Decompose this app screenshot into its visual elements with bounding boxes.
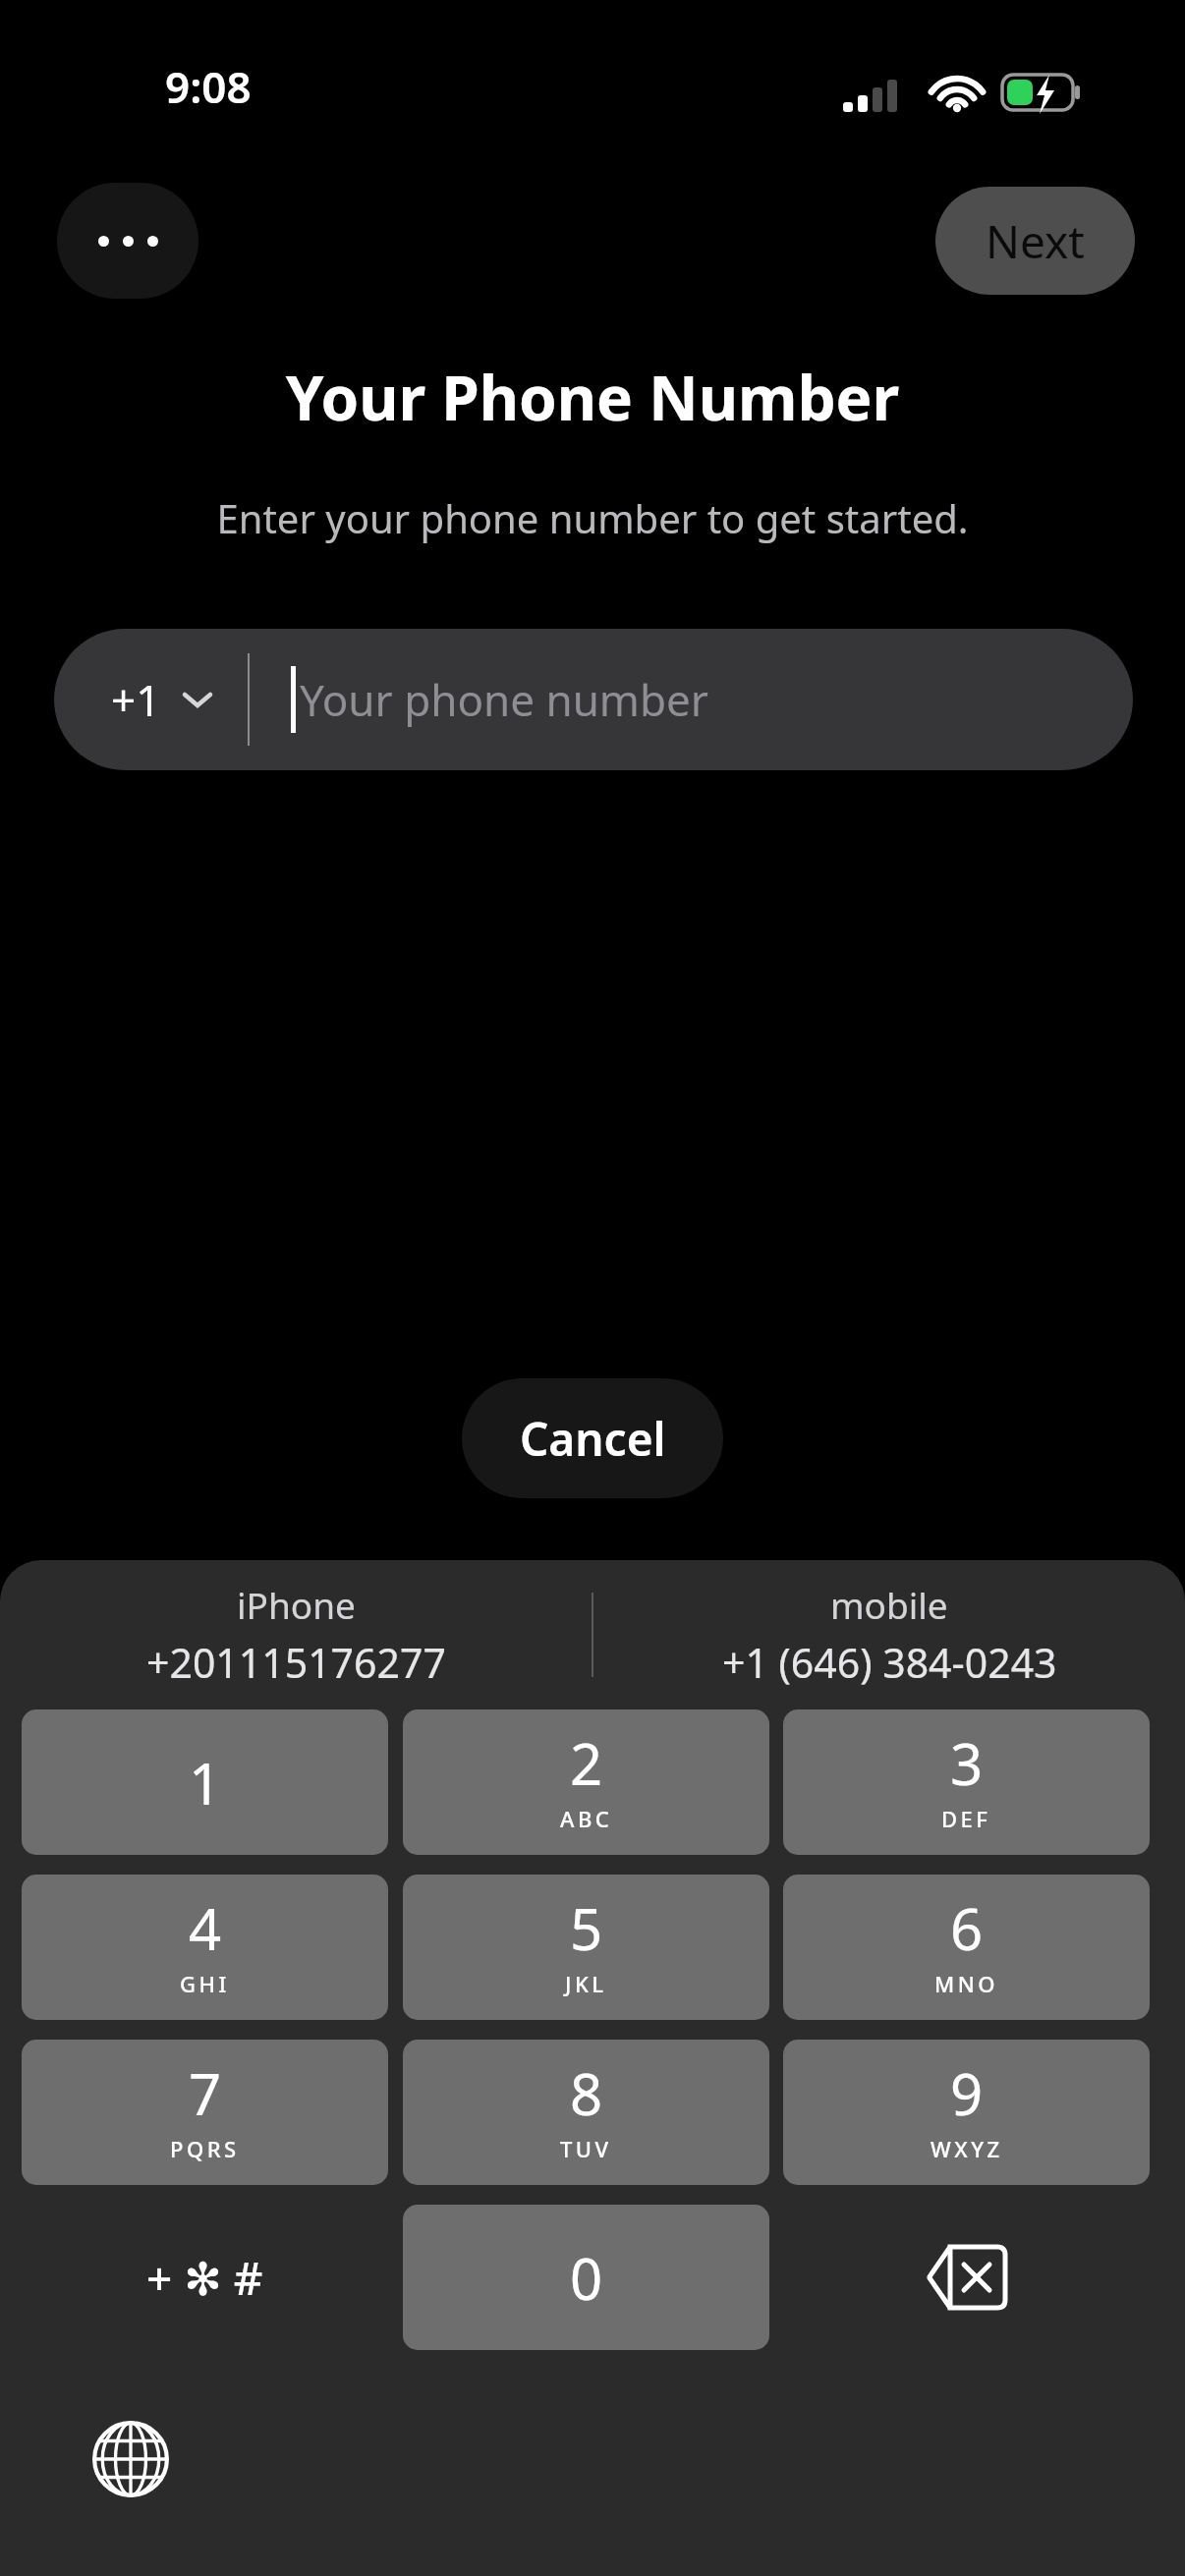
staticText: 1 <box>189 1744 222 1821</box>
staticText: JKL <box>565 1969 607 1998</box>
button[interactable]: 7 <box>22 2040 388 2185</box>
button[interactable]: iPhone <box>0 1580 592 1690</box>
staticText: GHI <box>180 1969 230 1998</box>
staticText: WXYZ <box>931 2134 1003 2163</box>
button[interactable]: 0 <box>403 2205 769 2350</box>
staticText: +1 <box>111 670 161 729</box>
staticText: 0 <box>570 2239 603 2317</box>
staticText: iPhone <box>237 1580 356 1629</box>
staticText: 8 <box>570 2054 603 2132</box>
staticText: 2 <box>570 1724 603 1802</box>
button[interactable]: +1 <box>54 629 1133 770</box>
staticText: 5 <box>570 1889 603 1967</box>
staticText: 3 <box>950 1724 984 1802</box>
staticText: 7 <box>189 2054 222 2132</box>
button[interactable]: Cancel <box>462 1378 723 1498</box>
staticText: Cancel <box>520 1408 666 1470</box>
button[interactable]: Backspace <box>783 2205 1150 2350</box>
button[interactable]: mobile <box>593 1580 1185 1690</box>
staticText: TUV <box>560 2134 612 2163</box>
button[interactable]: 6 <box>783 1875 1150 2020</box>
staticText: + ✻ # <box>146 2247 263 2309</box>
staticText: MNO <box>934 1969 999 1998</box>
staticText: Next <box>986 210 1085 272</box>
button[interactable]: + ✻ # <box>22 2205 388 2350</box>
staticText: ABC <box>560 1804 613 1833</box>
staticText: mobile <box>830 1580 948 1629</box>
button[interactable]: 8 <box>403 2040 769 2185</box>
button[interactable]: 4 <box>22 1875 388 2020</box>
button[interactable]: Next <box>935 187 1135 295</box>
button[interactable]: 1 <box>22 1709 388 1855</box>
staticText: 6 <box>950 1889 984 1967</box>
button[interactable]: 9 <box>783 2040 1150 2185</box>
staticText: Your Phone Number <box>0 356 1185 438</box>
button[interactable]: 3 <box>783 1709 1150 1855</box>
button[interactable]: Change keyboard language <box>77 2405 185 2513</box>
button[interactable]: 2 <box>403 1709 769 1855</box>
staticText: Your phone number <box>300 670 709 729</box>
staticText: +1 (646) 384-0243 <box>722 1635 1057 1690</box>
staticText: 9:08 <box>165 57 252 116</box>
button[interactable]: 5 <box>403 1875 769 2020</box>
staticText: Enter your phone number to get started. <box>0 491 1185 544</box>
staticText: PQRS <box>170 2134 240 2163</box>
staticText: DEF <box>941 1804 991 1833</box>
staticText: +201115176277 <box>146 1635 446 1690</box>
button[interactable]: More options <box>57 183 198 299</box>
staticText: 9 <box>950 2054 984 2132</box>
staticText: 4 <box>189 1889 222 1967</box>
